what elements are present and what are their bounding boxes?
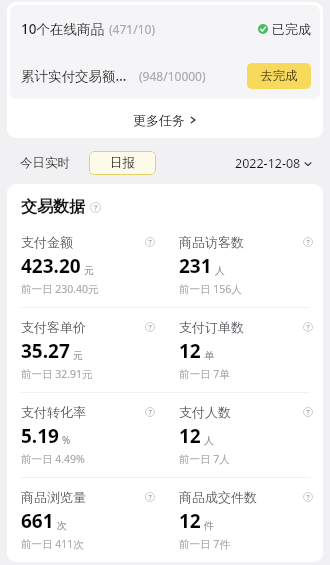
staticText: 交易数据 xyxy=(21,197,85,217)
staticText: 5.19 xyxy=(21,423,59,449)
staticText: 元 xyxy=(73,349,83,362)
staticText: 423.20 xyxy=(21,253,81,279)
staticText: 商品成交件数 xyxy=(179,489,257,505)
button[interactable]: 支付订单数 xyxy=(165,308,323,392)
staticText: 支付金额 xyxy=(21,234,73,250)
staticText: 10个在线商品 xyxy=(21,20,104,38)
staticText: 661 xyxy=(21,508,54,534)
button[interactable]: 商品访客数 xyxy=(165,223,323,307)
staticText: 次 xyxy=(57,519,67,532)
button[interactable]: 支付人数 xyxy=(165,393,323,477)
staticText: 人 xyxy=(204,434,214,447)
button[interactable]: 今日实时 xyxy=(14,151,76,175)
staticText: (948/10000) xyxy=(139,68,206,84)
button[interactable]: 更多任务 xyxy=(7,102,323,138)
staticText: 件 xyxy=(204,519,214,532)
button[interactable]: 商品成交件数 xyxy=(165,478,323,562)
staticText: 231 xyxy=(179,253,212,279)
staticText: 支付转化率 xyxy=(21,404,86,420)
button[interactable]: 10个在线商品 xyxy=(10,5,320,52)
staticText: (471/10) xyxy=(109,21,155,37)
staticText: 商品访客数 xyxy=(179,234,244,250)
staticText: 日报 xyxy=(110,155,135,171)
staticText: 支付人数 xyxy=(179,404,231,420)
button[interactable]: 支付金额 xyxy=(7,223,165,307)
staticText: 前一日 32.91元 xyxy=(21,367,93,381)
staticText: 12 xyxy=(179,508,201,534)
staticText: 累计实付交易额… xyxy=(21,67,127,85)
button[interactable]: 日报 xyxy=(89,151,156,175)
staticText: 支付订单数 xyxy=(179,319,244,335)
staticText: 支付客单价 xyxy=(21,319,86,335)
staticText: 更多任务 xyxy=(133,112,185,128)
button[interactable]: 累计实付交易额… xyxy=(10,52,320,99)
staticText: 前一日 7人 xyxy=(179,452,230,466)
staticText: 商品浏览量 xyxy=(21,489,86,505)
staticText: 单 xyxy=(204,349,214,362)
button[interactable]: 支付转化率 xyxy=(7,393,165,477)
staticText: 2022-12-08 xyxy=(235,155,301,172)
staticText: 已完成 xyxy=(272,21,311,37)
staticText: 去完成 xyxy=(260,68,298,84)
staticText: 12 xyxy=(179,338,201,364)
staticText: 人 xyxy=(215,264,225,277)
staticText: 35.27 xyxy=(21,338,70,364)
staticText: 前一日 411次 xyxy=(21,537,84,551)
button[interactable]: 2022-12-08 xyxy=(231,151,316,176)
button[interactable]: 去完成 xyxy=(247,63,311,89)
button[interactable]: 商品浏览量 xyxy=(7,478,165,562)
staticText: 前一日 230.40元 xyxy=(21,282,99,296)
staticText: 前一日 7单 xyxy=(179,367,230,381)
staticText: 12 xyxy=(179,423,201,449)
staticText: 前一日 156人 xyxy=(179,282,242,296)
staticText: 今日实时 xyxy=(20,155,70,171)
staticText: 前一日 7件 xyxy=(179,537,230,551)
staticText: 前一日 4.49% xyxy=(21,452,85,466)
staticText: % xyxy=(62,433,71,447)
staticText: 元 xyxy=(84,264,94,277)
button[interactable]: 支付客单价 xyxy=(7,308,165,392)
